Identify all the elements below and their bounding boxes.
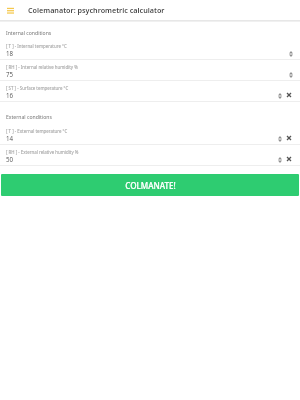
staticText: [ T ] - External temperature °C (6, 128, 68, 134)
button[interactable]: Increment or decrement value (286, 49, 295, 58)
staticText: 50 (6, 155, 14, 163)
button[interactable]: Increment or decrement value (275, 155, 284, 164)
button[interactable]: [ RH ] - External relative humidity % (0, 145, 300, 166)
button[interactable]: Increment or decrement value (275, 134, 284, 143)
button[interactable]: Increment or decrement value (275, 91, 284, 100)
button[interactable]: [ RH ] - Internal relative humidity % (0, 60, 300, 81)
staticText: [ T ] - Internal temperature °C (6, 43, 67, 49)
staticText: Internal conditions (6, 30, 52, 37)
staticText: 75 (6, 70, 14, 78)
staticText: External conditions (6, 114, 52, 121)
staticText: [ ST ] - Surface temperature °C (6, 85, 69, 91)
button[interactable]: [ T ] - Internal temperature °C (0, 39, 300, 60)
staticText: [ RH ] - Internal relative humidity % (6, 64, 78, 70)
button[interactable]: Clear field (284, 133, 293, 142)
button[interactable]: Open navigation menu (0, 0, 20, 20)
staticText: COLMANATE! (125, 180, 176, 191)
staticText: Colemanator: psychrometric calculator (28, 5, 165, 15)
button[interactable]: COLMANATE! (1, 174, 299, 196)
button[interactable]: Clear field (284, 154, 293, 163)
button[interactable]: Increment or decrement value (286, 70, 295, 79)
staticText: [ RH ] - External relative humidity % (6, 149, 79, 155)
staticText: 16 (6, 91, 14, 99)
button[interactable]: Clear field (284, 90, 293, 99)
staticText: 18 (6, 49, 14, 57)
button[interactable]: [ T ] - External temperature °C (0, 124, 300, 145)
staticText: 14 (6, 134, 14, 142)
button[interactable]: [ ST ] - Surface temperature °C (0, 81, 300, 102)
